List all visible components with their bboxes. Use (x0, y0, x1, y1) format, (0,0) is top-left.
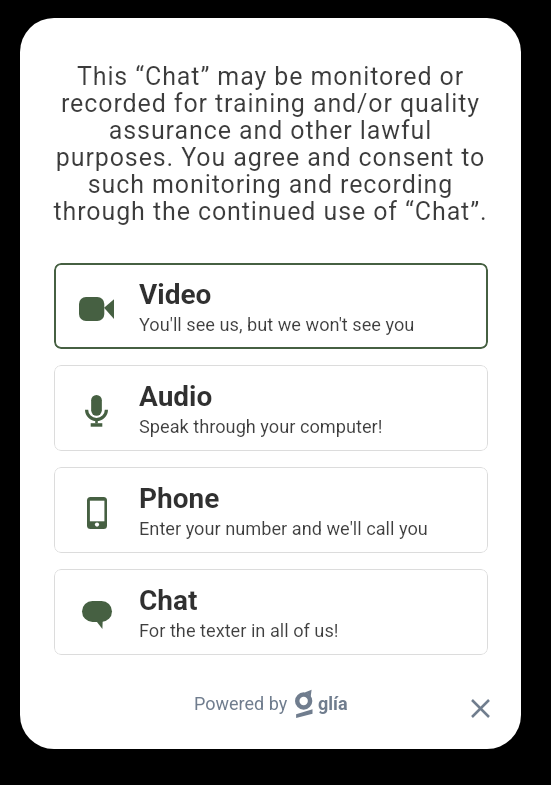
button[interactable]: Audio (54, 365, 488, 451)
staticText: Enter your number and we'll call you (139, 518, 428, 539)
button[interactable]: Video (54, 263, 488, 349)
button[interactable]: Phone (54, 467, 488, 553)
staticText: glía (318, 693, 348, 714)
button[interactable]: Close (458, 686, 502, 730)
staticText: Chat (139, 584, 198, 617)
staticText: Speak through your computer! (139, 416, 383, 437)
staticText: Phone (139, 482, 220, 515)
button[interactable]: Chat (54, 569, 488, 655)
staticText: This “Chat” may be monitored or recorded… (20, 62, 521, 226)
staticText: Video (139, 278, 212, 311)
staticText: You'll see us, but we won't see you (139, 314, 415, 335)
staticText: Powered by (194, 693, 288, 714)
staticText: For the texter in all of us! (139, 620, 339, 641)
staticText: Audio (139, 380, 213, 413)
